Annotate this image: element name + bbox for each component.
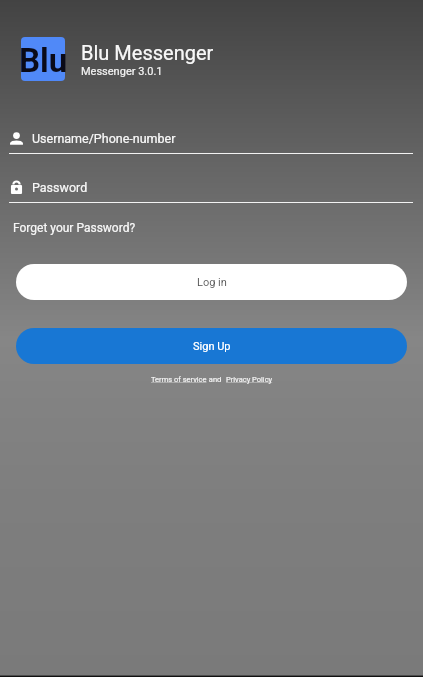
button[interactable]: Password — [9, 171, 413, 203]
staticText: Messenger 3.0.1 — [81, 65, 163, 78]
staticText: Sign Up — [193, 340, 231, 353]
other: Password — [9, 180, 24, 195]
staticText: Password — [32, 180, 88, 195]
button[interactable]: Privacy Policy — [226, 375, 273, 384]
button[interactable]: Sign Up — [16, 328, 407, 364]
button[interactable]: Terms of service — [151, 375, 207, 384]
other: Username — [9, 131, 24, 146]
staticText: Blu — [19, 41, 68, 80]
staticText: Username/Phone-number — [32, 131, 176, 146]
staticText: Blu Messenger — [81, 41, 214, 64]
staticText: Forget your Password? — [13, 221, 136, 235]
button[interactable]: Log in — [16, 264, 407, 300]
staticText: Log in — [197, 276, 227, 289]
button[interactable]: Username — [9, 122, 413, 154]
staticText: and — [207, 375, 226, 384]
button[interactable]: Forget your Password? — [10, 218, 139, 238]
